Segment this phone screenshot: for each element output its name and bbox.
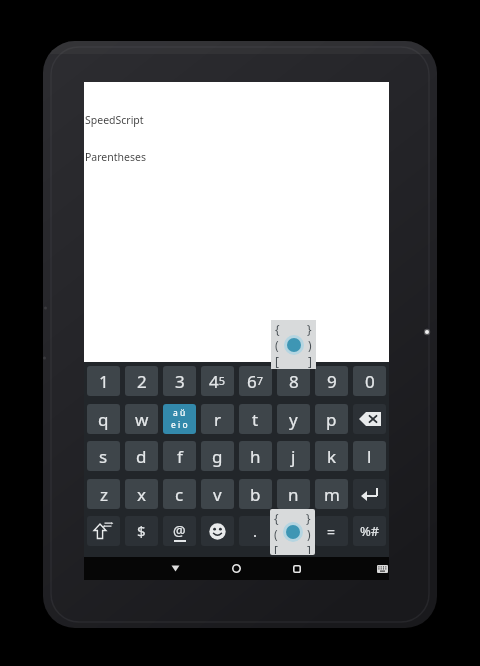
staticText: a ŭ — [173, 407, 186, 419]
button[interactable]: @ — [163, 516, 196, 546]
button[interactable]: { — [270, 509, 315, 555]
button[interactable]: a ŭ — [163, 404, 196, 434]
staticText: 9 — [327, 370, 337, 393]
staticText: 1 — [99, 370, 109, 393]
button[interactable]: 1 — [87, 366, 120, 396]
staticText: = — [327, 522, 336, 541]
button[interactable]: l — [353, 441, 386, 471]
button[interactable]: 67 — [239, 366, 272, 396]
staticText: %# — [360, 522, 380, 540]
staticText: d — [136, 445, 147, 468]
button[interactable]: k — [315, 441, 348, 471]
button[interactable] — [87, 516, 120, 546]
staticText: ( — [275, 337, 279, 353]
staticText: j — [291, 445, 296, 468]
staticText: t — [252, 408, 259, 431]
staticText: z — [100, 483, 108, 506]
button[interactable]: q — [87, 404, 120, 434]
button[interactable] — [168, 557, 182, 580]
button[interactable]: 9 — [315, 366, 348, 396]
staticText: ) — [308, 337, 312, 353]
staticText: 8 — [289, 370, 299, 393]
button[interactable] — [353, 404, 386, 434]
staticText: x — [137, 483, 146, 506]
staticText: 67 — [247, 370, 264, 393]
staticText: ( — [274, 526, 278, 542]
staticText: ] — [307, 542, 311, 554]
button[interactable]: c — [163, 479, 196, 509]
button[interactable]: %# — [353, 516, 386, 546]
button[interactable]: j — [277, 441, 310, 471]
button[interactable] — [229, 557, 243, 580]
staticText: ] — [308, 353, 312, 368]
staticText: SpeedScript — [85, 113, 144, 127]
button[interactable]: 0 — [353, 366, 386, 396]
button[interactable]: y — [277, 404, 310, 434]
staticText: } — [307, 321, 312, 337]
staticText: { — [274, 510, 279, 526]
staticText: 45 — [209, 370, 226, 393]
staticText: @ — [173, 521, 186, 540]
staticText: 2 — [137, 370, 147, 393]
button[interactable]: $ — [125, 516, 158, 546]
staticText: m — [324, 483, 340, 506]
staticText: 3 — [175, 370, 185, 393]
staticText: e i o — [171, 419, 188, 431]
staticText: h — [250, 445, 261, 468]
staticText: y — [289, 408, 298, 431]
button[interactable]: n — [277, 479, 310, 509]
button[interactable]: d — [125, 441, 158, 471]
button[interactable] — [201, 516, 234, 546]
staticText: r — [214, 408, 222, 431]
staticText: Parentheses — [85, 150, 146, 164]
button[interactable]: g — [201, 441, 234, 471]
staticText: p — [326, 408, 337, 431]
button[interactable]: f — [163, 441, 196, 471]
staticText: s — [99, 445, 108, 468]
button[interactable]: m — [315, 479, 348, 509]
staticText: k — [327, 445, 337, 468]
staticText: { — [275, 321, 280, 337]
button[interactable]: w — [125, 404, 158, 434]
staticText: . — [253, 521, 258, 541]
button[interactable] — [353, 479, 386, 509]
staticText: v — [213, 483, 222, 506]
button[interactable]: b — [239, 479, 272, 509]
button[interactable]: z — [87, 479, 120, 509]
staticText: w — [135, 408, 149, 431]
button[interactable] — [290, 557, 304, 580]
staticText: [ — [275, 353, 279, 368]
button[interactable]: r — [201, 404, 234, 434]
staticText: [ — [274, 542, 278, 554]
staticText: c — [175, 483, 184, 506]
staticText: ) — [307, 526, 311, 542]
button[interactable]: 8 — [277, 366, 310, 396]
staticText: n — [288, 483, 299, 506]
button[interactable]: s — [87, 441, 120, 471]
staticText: g — [212, 445, 223, 468]
button[interactable]: 45 — [201, 366, 234, 396]
button[interactable]: t — [239, 404, 272, 434]
button[interactable]: x — [125, 479, 158, 509]
staticText: f — [177, 445, 183, 468]
button[interactable]: . — [239, 516, 272, 546]
button[interactable]: p — [315, 404, 348, 434]
button[interactable]: 3 — [163, 366, 196, 396]
staticText: 0 — [365, 370, 375, 393]
staticText: $ — [137, 521, 146, 541]
button[interactable]: = — [315, 516, 348, 546]
staticText: b — [250, 483, 261, 506]
button[interactable] — [374, 557, 390, 580]
button[interactable]: 2 — [125, 366, 158, 396]
staticText: q — [98, 408, 109, 431]
staticText: l — [367, 445, 372, 468]
button[interactable]: h — [239, 441, 272, 471]
button[interactable]: v — [201, 479, 234, 509]
staticText: } — [306, 510, 311, 526]
